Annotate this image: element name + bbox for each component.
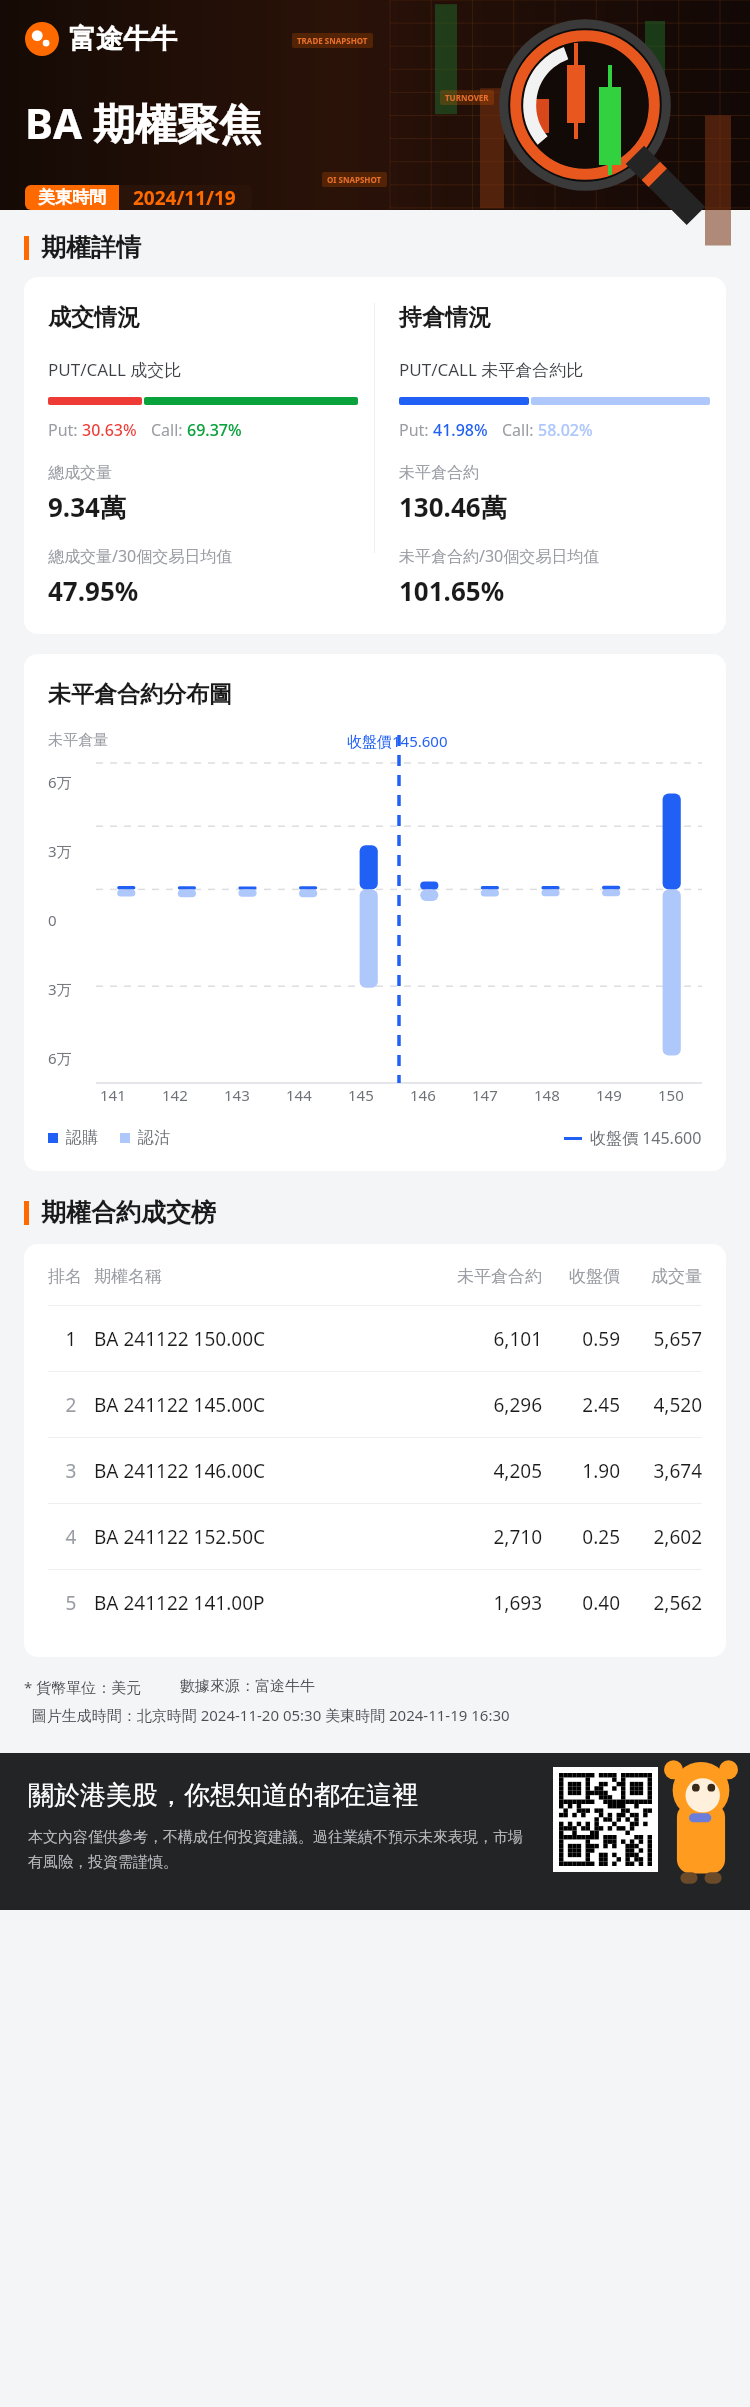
staticText: 收盤價 (542, 1266, 620, 1287)
staticText: 4,520 (620, 1392, 702, 1418)
staticText: 130.46萬 (399, 489, 507, 525)
button[interactable]: 美東時間 (25, 185, 252, 210)
staticText: TURNOVER (445, 92, 489, 103)
staticText: 9.34萬 (48, 489, 126, 525)
staticText: 1 (48, 1326, 94, 1352)
staticText: 總成交量 (48, 463, 112, 483)
staticText: 3,674 (620, 1458, 702, 1484)
staticText: 142 (162, 1085, 188, 1105)
staticText: BA 期權聚焦 (25, 94, 261, 151)
staticText: 58.02% (538, 419, 593, 441)
staticText: BA 241122 152.50C (94, 1524, 430, 1550)
staticText: OI SNAPSHOT (327, 174, 382, 185)
staticText: 持倉情況 (399, 303, 491, 332)
button[interactable]: 4 (48, 1504, 702, 1569)
button[interactable]: 3 (48, 1438, 702, 1503)
staticText: Call: (151, 419, 187, 441)
staticText: 5,657 (620, 1326, 702, 1352)
staticText: 0.59 (542, 1326, 620, 1352)
staticText: TRADE SNAPSHOT (297, 35, 368, 46)
staticText: 4 (48, 1524, 94, 1550)
staticText: 排名 (48, 1266, 94, 1287)
staticText: 富途牛牛 (69, 22, 177, 56)
staticText: * 貨幣單位：美元 (24, 1677, 142, 1697)
staticText: Put: (399, 419, 433, 441)
staticText: 圖片生成時間：北京時間 2024-11-20 05:30 美東時間 2024-1… (24, 1705, 510, 1725)
staticText: 收盤價145.600 (347, 731, 448, 751)
staticText: 認購 (66, 1128, 98, 1148)
staticText: 147 (472, 1085, 498, 1105)
staticText: 141 (100, 1085, 126, 1105)
staticText: 0.25 (542, 1524, 620, 1550)
staticText: 150 (658, 1085, 684, 1105)
staticText: 6万 (48, 772, 72, 792)
staticText: 6万 (48, 1048, 72, 1068)
staticText: 145 (348, 1085, 374, 1105)
staticText: BA 241122 145.00C (94, 1392, 430, 1418)
staticText: 143 (224, 1085, 250, 1105)
staticText: BA 241122 146.00C (94, 1458, 430, 1484)
staticText: 69.37% (187, 419, 242, 441)
staticText: PUT/CALL 未平倉合約比 (399, 358, 584, 381)
staticText: 2,602 (620, 1524, 702, 1550)
staticText: 41.98% (433, 419, 488, 441)
staticText: 146 (410, 1085, 436, 1105)
staticText: 148 (534, 1085, 560, 1105)
staticText: 1,693 (430, 1590, 542, 1616)
staticText: 期權名稱 (94, 1266, 430, 1287)
staticText: 收盤價 145.600 (590, 1127, 702, 1149)
staticText: 6,296 (430, 1392, 542, 1418)
staticText: 期權詳情 (41, 232, 141, 263)
staticText: 認沽 (138, 1128, 170, 1148)
staticText: 1.90 (542, 1458, 620, 1484)
staticText: 2,562 (620, 1590, 702, 1616)
staticText: 數據來源：富途牛牛 (180, 1677, 315, 1696)
staticText: 5 (48, 1590, 94, 1616)
staticText: 2.45 (542, 1392, 620, 1418)
staticText: 144 (286, 1085, 312, 1105)
staticText: PUT/CALL 成交比 (48, 358, 182, 381)
staticText: BA 241122 150.00C (94, 1326, 430, 1352)
staticText: 2,710 (430, 1524, 542, 1550)
staticText: 3万 (48, 979, 72, 999)
staticText: 關於港美股，你想知道的都在這裡 (28, 1779, 418, 1812)
staticText: 47.95% (48, 573, 139, 608)
staticText: 未平倉合約/30個交易日均值 (399, 545, 600, 567)
staticText: 總成交量/30個交易日均值 (48, 545, 233, 567)
staticText: 0.40 (542, 1590, 620, 1616)
staticText: Put: (48, 419, 82, 441)
staticText: Call: (502, 419, 538, 441)
staticText: 未平倉量 (48, 731, 108, 750)
staticText: BA 241122 141.00P (94, 1590, 430, 1616)
staticText: 未平倉合約 (430, 1266, 542, 1287)
staticText: 美東時間 (38, 187, 106, 208)
staticText: 4,205 (430, 1458, 542, 1484)
button[interactable]: 5 (48, 1570, 702, 1635)
staticText: 本文內容僅供參考，不構成任何投資建議。過往業績不預示未來表現，市場有風險，投資需… (28, 1828, 533, 1871)
staticText: 3 (48, 1458, 94, 1484)
staticText: 未平倉合約 (399, 463, 479, 483)
staticText: 2024/11/19 (133, 185, 236, 210)
button[interactable]: 2 (48, 1372, 702, 1437)
staticText: 期權合約成交榜 (41, 1197, 216, 1228)
staticText: 6,101 (430, 1326, 542, 1352)
staticText: 未平倉合約分布圖 (48, 680, 232, 709)
staticText: 30.63% (82, 419, 137, 441)
staticText: 0 (48, 910, 57, 930)
staticText: 成交情況 (48, 303, 140, 332)
staticText: 149 (596, 1085, 622, 1105)
staticText: 3万 (48, 841, 72, 861)
staticText: 成交量 (620, 1266, 702, 1287)
staticText: 2 (48, 1392, 94, 1418)
staticText: 101.65% (399, 573, 505, 608)
button[interactable]: 1 (48, 1306, 702, 1371)
